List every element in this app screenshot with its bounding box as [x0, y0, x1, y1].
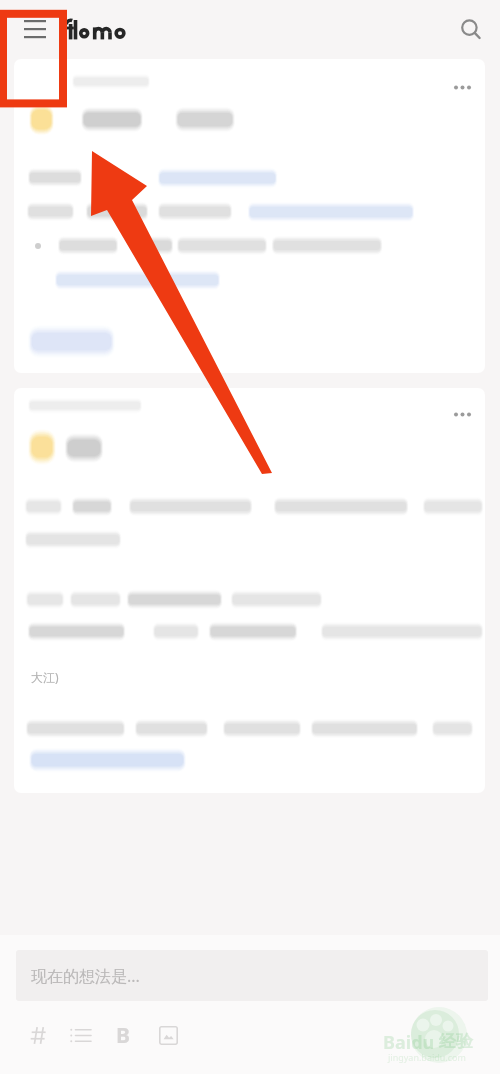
button[interactable]: Insert image [154, 1017, 182, 1053]
button[interactable]: Bold [109, 1017, 137, 1053]
button[interactable] [32, 329, 111, 354]
button[interactable]: Menu [12, 5, 58, 53]
button[interactable]: Add tag [24, 1017, 52, 1053]
staticText: B [116, 1021, 130, 1050]
button[interactable]: More options [14, 59, 485, 373]
button[interactable]: Bullet list [66, 1017, 94, 1053]
staticText: Baidu [383, 1030, 435, 1055]
button[interactable]: Search [449, 7, 489, 47]
staticText: 现在的想法是... [31, 965, 140, 987]
button[interactable]: 大江) [14, 388, 485, 793]
staticText: 大江) [31, 669, 59, 685]
button[interactable]: 现在的想法是... [16, 950, 488, 1001]
staticText: 经验 [439, 1031, 473, 1052]
button[interactable]: More options [446, 71, 478, 103]
button[interactable]: More options [446, 398, 478, 430]
staticText: jingyan.baidu.com [388, 1051, 466, 1063]
